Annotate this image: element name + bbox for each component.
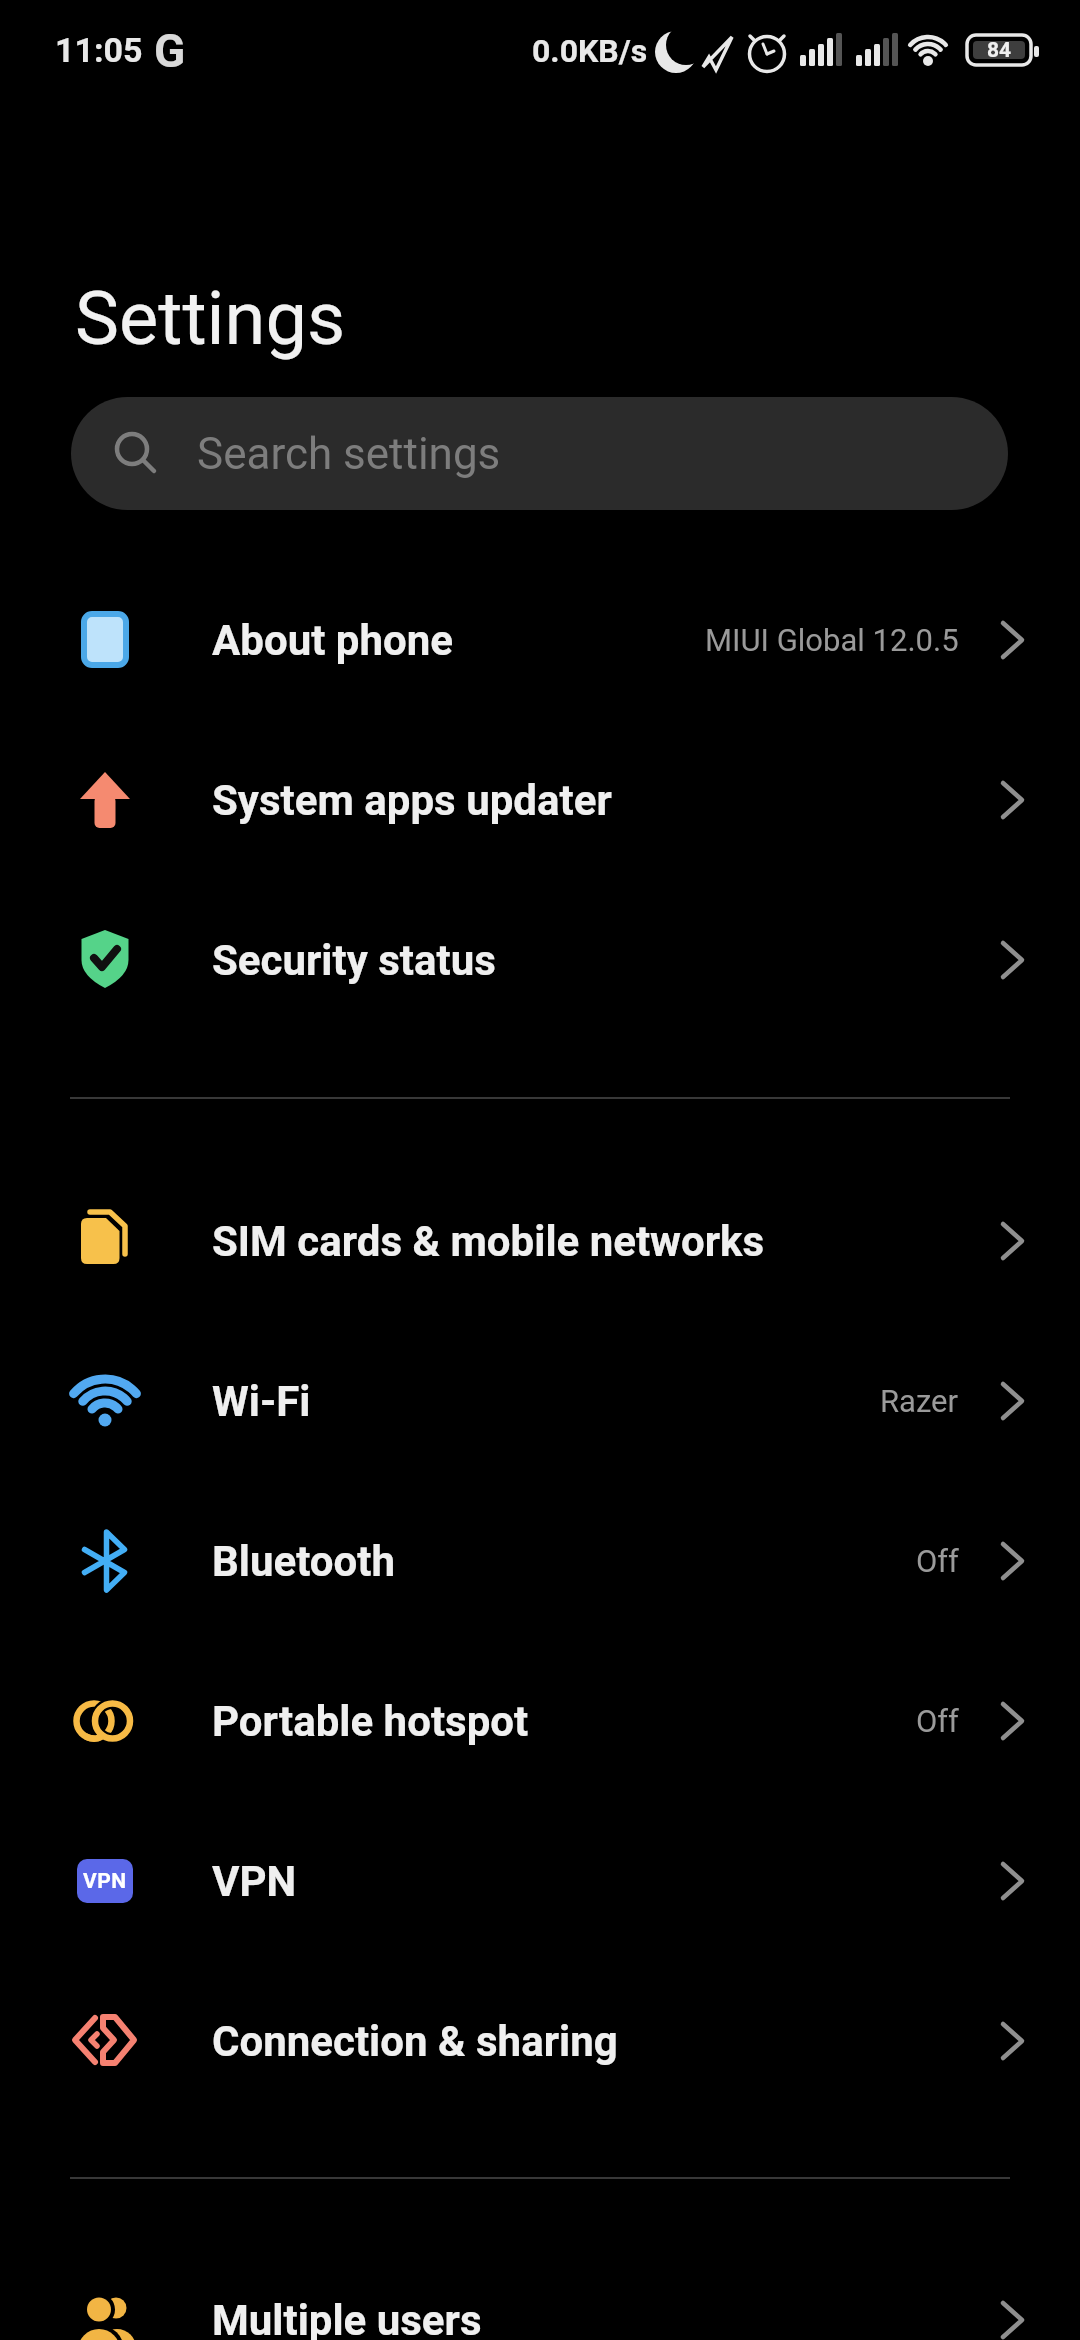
staticText: Bluetooth [212, 1537, 395, 1586]
button[interactable]: Connection & sharing [0, 1961, 1080, 2121]
button[interactable]: System apps updater [0, 720, 1080, 880]
staticText: Wi-Fi [212, 1377, 311, 1426]
staticText: MIUI Global 12.0.5 [705, 622, 959, 658]
button[interactable]: Wi-Fi [0, 1321, 1080, 1481]
staticText: About phone [212, 616, 453, 665]
staticText: Security status [212, 936, 496, 985]
staticText: Search settings [197, 428, 501, 480]
staticText: Razer [880, 1383, 959, 1419]
button[interactable]: Security status [0, 880, 1080, 1040]
staticText: VPN [212, 1857, 297, 1906]
staticText: Off [916, 1543, 959, 1579]
staticText: SIM cards & mobile networks [212, 1217, 765, 1266]
staticText: Multiple users [212, 2296, 482, 2340]
button[interactable]: Search settings [71, 397, 1008, 510]
staticText: Settings [75, 275, 346, 362]
staticText: Connection & sharing [212, 2017, 618, 2066]
staticText: G [154, 24, 186, 78]
button[interactable]: SIM cards & mobile networks [0, 1161, 1080, 1321]
staticText: 11:05 [55, 30, 143, 70]
button[interactable]: Portable hotspot [0, 1641, 1080, 1801]
staticText: 84 [987, 38, 1012, 63]
staticText: Portable hotspot [212, 1697, 529, 1746]
staticText: 0.0KB/s [532, 32, 648, 70]
button[interactable]: VPN [0, 1801, 1080, 1961]
button[interactable]: Bluetooth [0, 1481, 1080, 1641]
staticText: System apps updater [212, 776, 612, 825]
button[interactable]: Multiple users [0, 2240, 1080, 2340]
staticText: VPN [83, 1869, 127, 1894]
staticText: Off [916, 1703, 959, 1739]
button[interactable]: About phone [0, 560, 1080, 720]
